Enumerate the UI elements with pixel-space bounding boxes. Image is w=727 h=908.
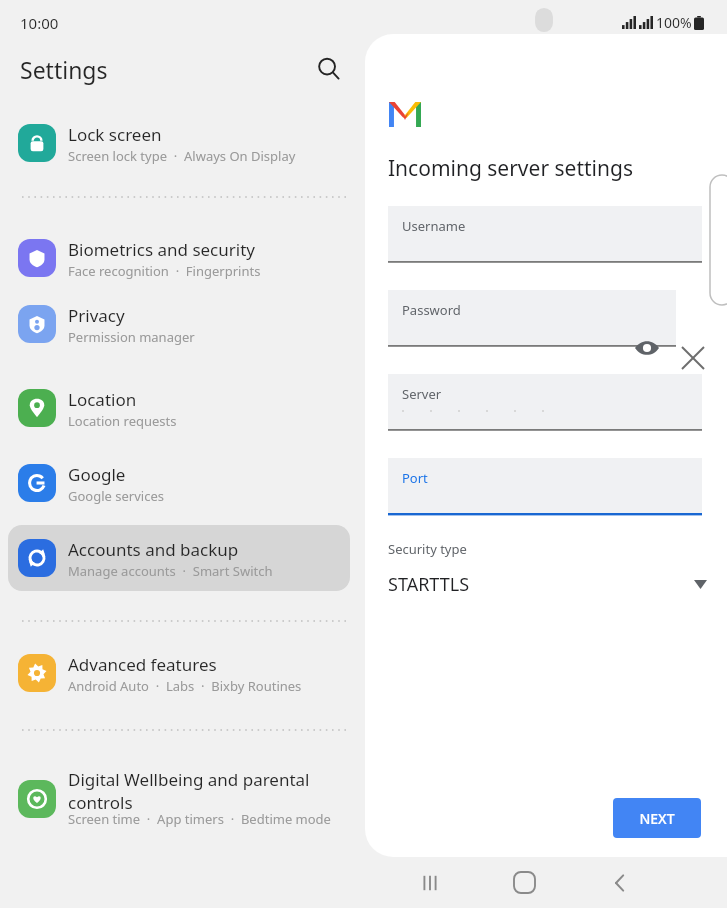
button[interactable]: NEXT <box>613 798 701 838</box>
staticText: Android Auto · Labs · Bixby Routines <box>68 677 353 695</box>
staticText: Location <box>68 388 348 411</box>
button[interactable] <box>8 760 350 838</box>
button[interactable] <box>8 375 350 441</box>
staticText: 10:00 <box>20 13 59 33</box>
staticText: Screen time · App timers · Bedtime mode <box>68 810 353 828</box>
staticText: Permission manager <box>68 328 353 346</box>
button[interactable]: Password <box>388 290 676 346</box>
staticText: Lock screen <box>68 123 348 146</box>
button[interactable] <box>8 225 350 291</box>
button[interactable]: Username <box>388 206 702 262</box>
staticText: Location requests <box>68 412 353 430</box>
button[interactable]: STARTTLS <box>379 562 713 606</box>
staticText: Password <box>402 301 461 319</box>
staticText: Google services <box>68 487 353 505</box>
staticText: Digital Wellbeing and parental controls <box>68 768 348 814</box>
button[interactable]: Server <box>388 374 702 430</box>
button[interactable] <box>8 525 350 591</box>
staticText: Security type <box>388 540 467 558</box>
button[interactable] <box>8 291 350 357</box>
button[interactable]: Search <box>308 48 350 90</box>
staticText: Manage accounts · Smart Switch <box>68 562 353 580</box>
staticText: Settings <box>20 54 108 85</box>
button[interactable] <box>8 450 350 516</box>
staticText: Screen lock type · Always On Display <box>68 147 353 165</box>
staticText: Advanced features <box>68 653 348 676</box>
staticText: Server <box>402 385 442 403</box>
staticText: Privacy <box>68 304 348 327</box>
staticText: 100% <box>656 13 692 32</box>
staticText: Biometrics and security <box>68 238 348 261</box>
button[interactable]: Show password <box>627 328 667 368</box>
button[interactable]: Back <box>594 857 646 908</box>
button[interactable] <box>8 640 350 706</box>
button[interactable]: Home <box>498 857 550 908</box>
staticText: Google <box>68 463 348 486</box>
staticText: Accounts and backup <box>68 538 348 561</box>
button[interactable]: Recents <box>404 857 456 908</box>
staticText: NEXT <box>639 809 675 828</box>
button[interactable]: Clear <box>672 337 714 379</box>
staticText: Username <box>402 217 466 235</box>
staticText: STARTTLS <box>388 572 470 597</box>
staticText: Port <box>402 469 428 487</box>
button[interactable]: Port <box>388 458 702 514</box>
staticText: Face recognition · Fingerprints <box>68 262 353 280</box>
button[interactable] <box>8 110 350 176</box>
staticText: Incoming server settings <box>388 154 633 183</box>
